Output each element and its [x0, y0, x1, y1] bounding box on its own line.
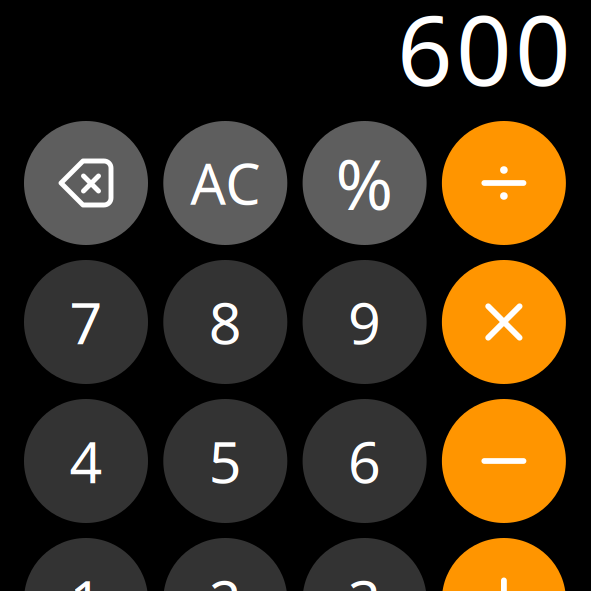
button[interactable]: % — [303, 121, 427, 245]
button[interactable]: 6 — [303, 399, 427, 523]
staticText: % — [336, 137, 394, 229]
staticText: 5 — [209, 423, 242, 499]
button[interactable]: 2 — [163, 538, 287, 591]
staticText: 4 — [69, 423, 102, 499]
button[interactable]: 5 — [163, 399, 287, 523]
button[interactable]: Divide — [442, 121, 566, 245]
staticText: 7 — [69, 284, 102, 360]
staticText: 6 — [348, 423, 381, 499]
button[interactable]: Plus — [442, 538, 566, 591]
staticText: 1 — [69, 562, 102, 591]
staticText: 9 — [348, 284, 381, 360]
button[interactable]: 4 — [24, 399, 148, 523]
button[interactable]: Minus — [442, 399, 566, 523]
staticText: 8 — [209, 284, 242, 360]
button[interactable]: 7 — [24, 260, 148, 384]
staticText: 600 — [397, 0, 571, 113]
button[interactable]: 3 — [303, 538, 427, 591]
button[interactable]: Multiply — [442, 260, 566, 384]
button[interactable]: 8 — [163, 260, 287, 384]
button[interactable]: Delete — [24, 121, 148, 245]
staticText: AC — [190, 146, 260, 220]
button[interactable]: AC — [163, 121, 287, 245]
button[interactable]: 1 — [24, 538, 148, 591]
staticText: 3 — [348, 562, 381, 591]
staticText: 2 — [209, 562, 242, 591]
button[interactable]: 9 — [303, 260, 427, 384]
